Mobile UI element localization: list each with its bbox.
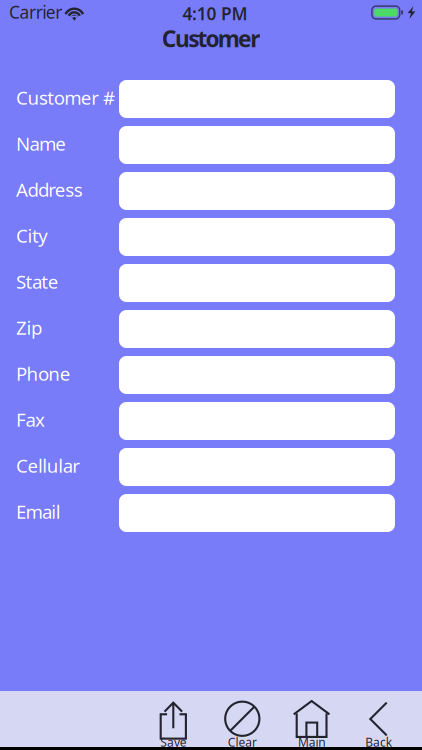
staticText: Name bbox=[16, 131, 66, 156]
button[interactable]: Back bbox=[345, 691, 411, 747]
staticText: 4:10 PM bbox=[182, 2, 248, 25]
staticText: Cellular bbox=[16, 453, 80, 478]
button[interactable]: Clear bbox=[209, 691, 275, 747]
staticText: Address bbox=[16, 177, 83, 202]
staticText: State bbox=[16, 269, 59, 294]
staticText: Main bbox=[298, 734, 325, 750]
staticText: Email bbox=[16, 499, 61, 524]
staticText: Back bbox=[365, 734, 392, 750]
staticText: Clear bbox=[228, 734, 257, 750]
staticText: Fax bbox=[16, 407, 45, 432]
staticText: Customer bbox=[162, 23, 260, 53]
button[interactable]: Save bbox=[140, 691, 206, 747]
button[interactable]: Main bbox=[279, 691, 345, 747]
staticText: Save bbox=[160, 734, 187, 750]
staticText: Phone bbox=[16, 361, 71, 386]
staticText: Customer # bbox=[16, 85, 115, 110]
staticText: Zip bbox=[16, 315, 42, 340]
staticText: Carrier bbox=[9, 0, 62, 23]
staticText: City bbox=[16, 223, 48, 248]
